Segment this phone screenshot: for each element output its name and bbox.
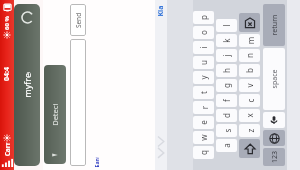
staticText: e: [198, 120, 209, 125]
button[interactable]: key: [239, 139, 260, 158]
staticText: space: [269, 69, 279, 88]
staticText: Klar: [156, 5, 166, 17]
button[interactable]: Detectubloading: [44, 65, 66, 164]
staticText: q: [198, 150, 209, 155]
staticText: i: [198, 46, 209, 49]
button[interactable]: [70, 39, 86, 166]
staticText: v: [244, 83, 255, 88]
staticText: w: [198, 134, 209, 141]
staticText: r: [198, 105, 209, 109]
staticText: 04:49: [2, 67, 12, 81]
button[interactable]: s: [216, 124, 237, 137]
staticText: s: [221, 128, 232, 132]
button[interactable]: q: [193, 146, 214, 159]
button[interactable]: v: [239, 79, 260, 92]
button[interactable]: key: [239, 13, 260, 32]
staticText: return: [269, 14, 279, 35]
button[interactable]: a: [216, 139, 237, 152]
staticText: 123: [269, 150, 279, 163]
staticText: l: [221, 24, 232, 27]
staticText: y: [198, 75, 209, 80]
button[interactable]: m: [239, 34, 260, 47]
button[interactable]: k: [216, 34, 237, 47]
staticText: p: [198, 15, 209, 20]
staticText: g: [221, 83, 232, 88]
button[interactable]: o: [193, 26, 214, 39]
staticText: myfreecams.com: [21, 72, 33, 98]
staticText: u: [198, 60, 209, 65]
button[interactable]: p: [193, 11, 214, 24]
staticText: Eanty, can i please d: [92, 157, 99, 167]
button[interactable]: u: [193, 56, 214, 69]
button[interactable]: b: [239, 64, 260, 77]
staticText: n: [244, 53, 255, 58]
staticText: b: [244, 68, 255, 73]
button[interactable]: space: [263, 48, 285, 110]
staticText: c: [244, 98, 255, 102]
button[interactable]: h: [216, 64, 237, 77]
button[interactable]: g: [216, 79, 237, 92]
button[interactable]: 123: [263, 148, 285, 166]
button[interactable]: i: [193, 41, 214, 54]
staticText: k: [221, 38, 232, 43]
button[interactable]: l: [216, 19, 237, 32]
staticText: h: [221, 68, 232, 73]
staticText: t: [198, 91, 209, 94]
button[interactable]: t: [193, 86, 214, 99]
staticText: Send: [73, 12, 82, 28]
staticText: j: [221, 54, 232, 57]
button[interactable]: Send: [70, 4, 86, 36]
staticText: o: [198, 30, 209, 35]
button[interactable]: key: [263, 130, 285, 146]
button[interactable]: r: [193, 101, 214, 114]
button[interactable]: myfreecams.com: [14, 4, 40, 166]
staticText: Detectubloading: [50, 104, 60, 126]
button[interactable]: j: [216, 49, 237, 62]
button[interactable]: f: [216, 94, 237, 107]
button[interactable]: c: [239, 94, 260, 107]
staticText: x: [244, 113, 255, 118]
staticText: d: [221, 113, 232, 118]
staticText: Carrier: [2, 142, 11, 156]
button[interactable]: key: [263, 112, 285, 128]
button[interactable]: y: [193, 71, 214, 84]
button[interactable]: w: [193, 131, 214, 144]
staticText: f: [221, 99, 232, 102]
staticText: z: [244, 128, 255, 132]
button[interactable]: d: [216, 109, 237, 122]
button[interactable]: e: [193, 116, 214, 129]
button[interactable]: n: [239, 49, 260, 62]
staticText: 60 %: [3, 16, 11, 30]
staticText: m: [244, 36, 255, 44]
button[interactable]: return: [263, 4, 285, 46]
staticText: a: [221, 143, 232, 148]
button[interactable]: z: [239, 124, 260, 137]
button[interactable]: x: [239, 109, 260, 122]
